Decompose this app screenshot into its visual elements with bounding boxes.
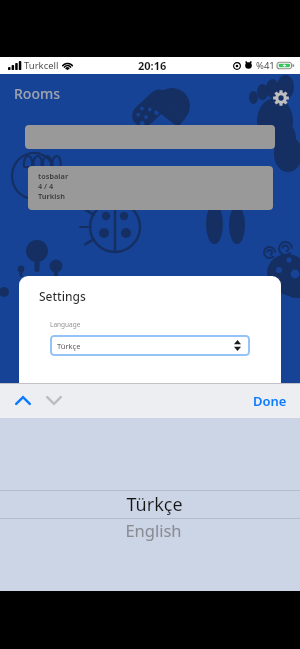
button[interactable]: Done <box>240 383 300 418</box>
button[interactable]: Next <box>36 383 71 418</box>
staticText: 4 / 4 <box>38 181 54 191</box>
staticText: Rooms <box>14 84 61 103</box>
button[interactable]: English <box>0 518 300 546</box>
button[interactable] <box>25 125 275 149</box>
button[interactable]: tosbalar <box>28 166 273 210</box>
staticText: %41 <box>256 59 275 72</box>
button[interactable]: Settings <box>269 86 293 110</box>
button[interactable]: Türkçe <box>0 490 300 518</box>
button[interactable]: Türkçe <box>50 335 250 356</box>
staticText: Turkcell <box>24 59 59 72</box>
staticText: Done <box>253 392 287 409</box>
staticText: Language <box>50 320 81 329</box>
staticText: Türkçe <box>126 492 183 517</box>
button[interactable]: Previous <box>5 383 40 418</box>
staticText: 20:16 <box>138 58 167 73</box>
staticText: tosbalar <box>38 171 69 181</box>
staticText: Turkish <box>38 191 65 201</box>
staticText: Settings <box>39 288 86 304</box>
staticText: Türkçe <box>57 341 81 351</box>
staticText: English <box>125 519 182 541</box>
